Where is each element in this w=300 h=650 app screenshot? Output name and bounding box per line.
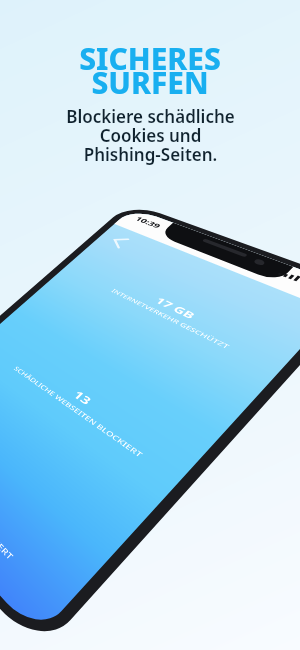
staticText: SICHERES SURFEN [79, 38, 221, 103]
staticText: Blockiere schädliche Cookies und Phishin… [66, 105, 235, 166]
